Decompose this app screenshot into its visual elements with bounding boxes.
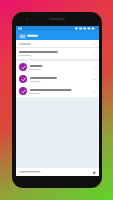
- button[interactable]: More options: [16, 48, 99, 59]
- button[interactable]: More options: [92, 42, 96, 46]
- button[interactable]: Send: [91, 170, 96, 175]
- button[interactable]: Navigation menu: [18, 32, 26, 40]
- button[interactable]: More options: [92, 77, 96, 81]
- button[interactable]: More options: [16, 40, 99, 47]
- button[interactable]: Send: [16, 168, 99, 176]
- button[interactable]: [27, 32, 41, 40]
- button[interactable]: More options: [92, 89, 96, 93]
- button[interactable]: More options: [92, 52, 96, 56]
- button[interactable]: More options: [16, 85, 99, 97]
- button[interactable]: More options: [16, 73, 99, 85]
- button[interactable]: More options: [92, 65, 96, 69]
- button[interactable]: More options: [16, 61, 99, 73]
